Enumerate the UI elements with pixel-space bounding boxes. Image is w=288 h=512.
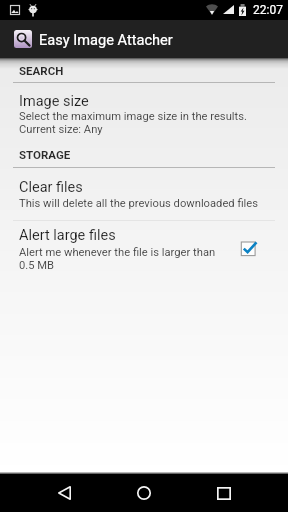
button[interactable]: Back <box>44 474 84 512</box>
staticText: Image size <box>19 93 89 110</box>
staticText: Select the maximum image size in the res… <box>19 110 247 123</box>
button[interactable]: Recent apps <box>204 474 244 512</box>
staticText: STORAGE <box>19 148 71 161</box>
staticText: Current size: Any <box>19 123 103 136</box>
staticText: 0.5 MB <box>19 259 55 272</box>
staticText: Clear files <box>19 179 83 196</box>
staticText: This will delete all the previous downlo… <box>19 197 259 210</box>
button[interactable]: Clear files <box>0 170 288 219</box>
staticText: Easy Image Attacher <box>39 31 173 48</box>
button[interactable]: Image size <box>0 85 288 138</box>
button[interactable]: Alert large files <box>0 220 288 274</box>
staticText: Alert me whenever the file is larger tha… <box>19 246 216 259</box>
staticText: 22:07 <box>253 3 283 17</box>
staticText: Alert large files <box>19 227 116 244</box>
staticText: SEARCH <box>19 64 64 77</box>
button[interactable]: Home <box>124 474 164 512</box>
